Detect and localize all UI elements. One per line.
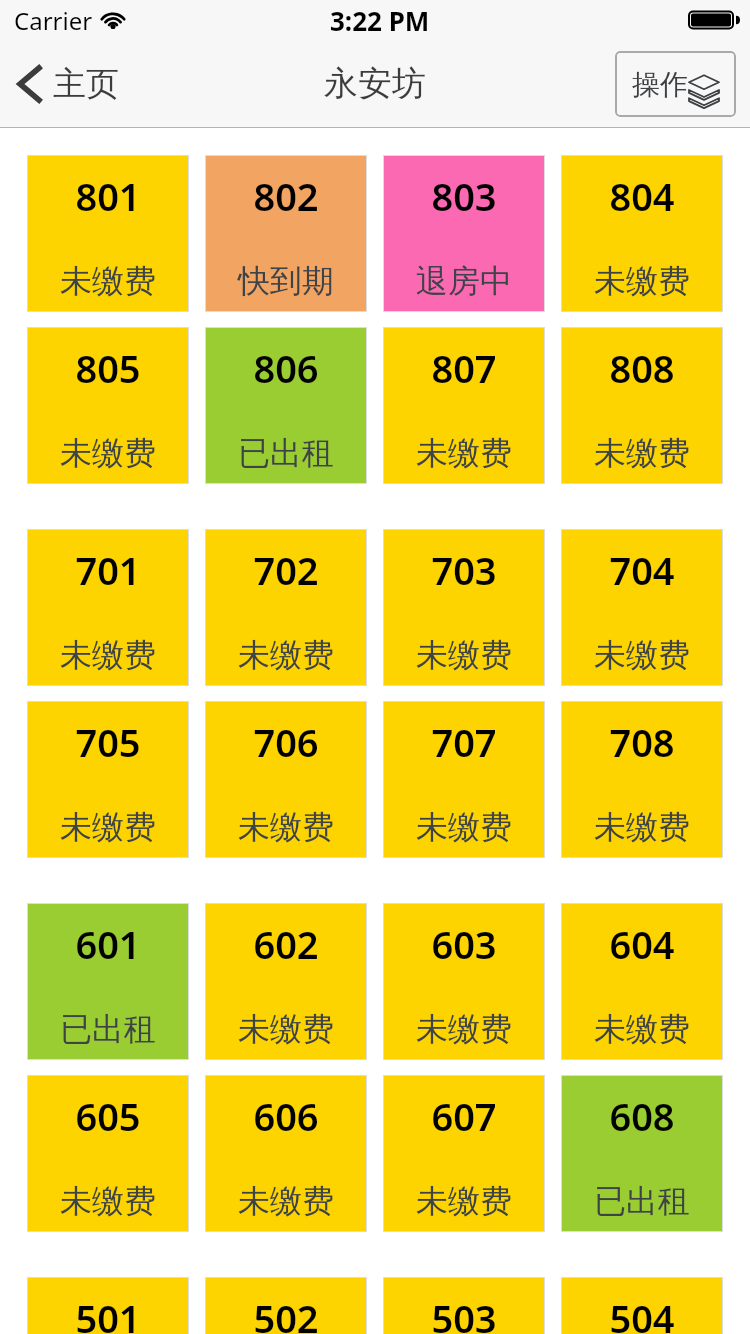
button[interactable]: 706 xyxy=(205,701,367,858)
staticText: 未缴费 xyxy=(594,261,690,301)
button[interactable]: 操作 xyxy=(615,51,736,117)
staticText: 未缴费 xyxy=(238,1181,334,1221)
staticText: 未缴费 xyxy=(416,635,512,675)
staticText: 快到期 xyxy=(238,261,334,301)
staticText: 已出租 xyxy=(60,1009,156,1049)
staticText: 806 xyxy=(253,342,319,394)
staticText: 604 xyxy=(609,918,675,970)
staticText: 607 xyxy=(431,1090,497,1142)
button[interactable]: 805 xyxy=(27,327,189,484)
button[interactable]: 708 xyxy=(561,701,723,858)
staticText: 未缴费 xyxy=(594,1009,690,1049)
staticText: 706 xyxy=(253,716,319,768)
staticText: 未缴费 xyxy=(60,635,156,675)
staticText: 退房中 xyxy=(416,261,512,301)
staticText: 804 xyxy=(609,170,675,222)
staticText: 803 xyxy=(431,170,497,222)
staticText: 808 xyxy=(609,342,675,394)
staticText: 未缴费 xyxy=(238,635,334,675)
button[interactable]: 608 xyxy=(561,1075,723,1232)
button[interactable]: 501 xyxy=(27,1277,189,1334)
staticText: 702 xyxy=(253,544,319,596)
staticText: 操作 xyxy=(632,67,688,102)
button[interactable]: 504 xyxy=(561,1277,723,1334)
staticText: 未缴费 xyxy=(238,1009,334,1049)
button[interactable]: 807 xyxy=(383,327,545,484)
staticText: 未缴费 xyxy=(60,433,156,473)
button[interactable]: 703 xyxy=(383,529,545,686)
staticText: 502 xyxy=(253,1292,319,1334)
staticText: 701 xyxy=(75,544,141,596)
button[interactable]: 605 xyxy=(27,1075,189,1232)
staticText: 603 xyxy=(431,918,497,970)
button[interactable]: 707 xyxy=(383,701,545,858)
staticText: 未缴费 xyxy=(594,635,690,675)
button[interactable]: 701 xyxy=(27,529,189,686)
button[interactable]: 704 xyxy=(561,529,723,686)
staticText: 已出租 xyxy=(238,433,334,473)
staticText: 601 xyxy=(75,918,141,970)
staticText: 801 xyxy=(75,170,141,222)
button[interactable]: 705 xyxy=(27,701,189,858)
button[interactable]: 603 xyxy=(383,903,545,1060)
button[interactable]: 801 xyxy=(27,155,189,312)
staticText: 501 xyxy=(75,1292,141,1334)
staticText: 605 xyxy=(75,1090,141,1142)
staticText: 永安坊 xyxy=(324,62,426,105)
button[interactable]: 702 xyxy=(205,529,367,686)
button[interactable]: 606 xyxy=(205,1075,367,1232)
staticText: 未缴费 xyxy=(416,433,512,473)
staticText: 未缴费 xyxy=(238,807,334,847)
staticText: 703 xyxy=(431,544,497,596)
button[interactable]: 604 xyxy=(561,903,723,1060)
staticText: 未缴费 xyxy=(594,807,690,847)
staticText: 3:22 PM xyxy=(330,3,430,38)
staticText: 未缴费 xyxy=(416,807,512,847)
button[interactable]: 804 xyxy=(561,155,723,312)
button[interactable]: 803 xyxy=(383,155,545,312)
staticText: 已出租 xyxy=(594,1181,690,1221)
button[interactable]: 808 xyxy=(561,327,723,484)
staticText: 未缴费 xyxy=(60,807,156,847)
staticText: 704 xyxy=(609,544,675,596)
button[interactable]: 806 xyxy=(205,327,367,484)
button[interactable]: 503 xyxy=(383,1277,545,1334)
staticText: 805 xyxy=(75,342,141,394)
staticText: 802 xyxy=(253,170,319,222)
button[interactable]: 802 xyxy=(205,155,367,312)
staticText: 未缴费 xyxy=(60,1181,156,1221)
staticText: 504 xyxy=(609,1292,675,1334)
staticText: 707 xyxy=(431,716,497,768)
staticText: 606 xyxy=(253,1090,319,1142)
staticText: 未缴费 xyxy=(594,433,690,473)
staticText: 602 xyxy=(253,918,319,970)
staticText: 主页 xyxy=(53,63,119,105)
button[interactable]: 602 xyxy=(205,903,367,1060)
staticText: 708 xyxy=(609,716,675,768)
staticText: 未缴费 xyxy=(416,1181,512,1221)
button[interactable]: 601 xyxy=(27,903,189,1060)
staticText: 608 xyxy=(609,1090,675,1142)
button[interactable]: 607 xyxy=(383,1075,545,1232)
button[interactable]: 返回主页 xyxy=(0,40,135,127)
staticText: Carrier xyxy=(14,4,93,37)
staticText: 807 xyxy=(431,342,497,394)
button[interactable]: 502 xyxy=(205,1277,367,1334)
staticText: 未缴费 xyxy=(416,1009,512,1049)
staticText: 503 xyxy=(431,1292,497,1334)
staticText: 未缴费 xyxy=(60,261,156,301)
staticText: 705 xyxy=(75,716,141,768)
